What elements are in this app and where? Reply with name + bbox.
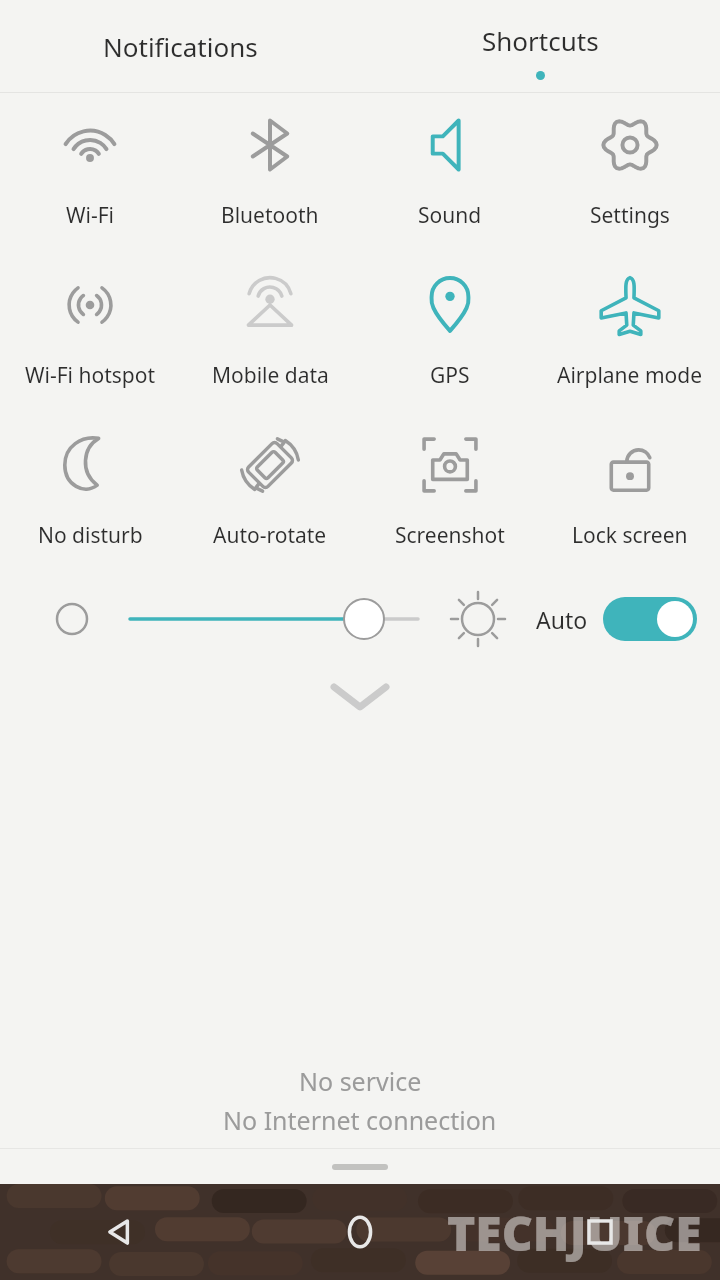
button[interactable]: Lock screen — [540, 413, 720, 573]
button[interactable]: Home — [240, 1184, 480, 1280]
button[interactable]: No disturb — [0, 413, 180, 573]
button[interactable]: Wi-Fi hotspot — [0, 253, 180, 413]
button[interactable]: Bluetooth — [180, 93, 360, 253]
staticText: Screenshot — [395, 521, 505, 550]
staticText: Wi-Fi — [66, 201, 115, 230]
staticText: Lock screen — [572, 521, 688, 550]
staticText: Mobile data — [212, 361, 329, 390]
staticText: Shortcuts — [482, 23, 599, 58]
staticText: Auto — [536, 604, 588, 635]
button[interactable]: Settings — [540, 93, 720, 253]
button[interactable]: Notifications — [0, 0, 360, 92]
staticText: Notifications — [103, 29, 258, 64]
staticText: TECHJUICE — [447, 1200, 702, 1265]
staticText: No disturb — [38, 521, 143, 550]
button[interactable]: Auto-rotate — [180, 413, 360, 573]
staticText: No service — [299, 1064, 422, 1098]
staticText: Sound — [418, 201, 482, 230]
staticText: Wi-Fi hotspot — [25, 361, 156, 390]
staticText: GPS — [430, 361, 470, 390]
button[interactable]: Auto — [536, 597, 697, 641]
button[interactable]: Shortcuts — [360, 0, 720, 92]
staticText: Settings — [590, 201, 670, 230]
button[interactable]: Airplane mode — [540, 253, 720, 413]
button[interactable]: Back — [0, 1184, 240, 1280]
staticText: No Internet connection — [223, 1103, 497, 1137]
button[interactable]: Wi-Fi — [0, 93, 180, 253]
staticText: Airplane mode — [557, 361, 703, 390]
staticText: Bluetooth — [221, 201, 319, 230]
button[interactable]: Recents — [480, 1184, 720, 1280]
staticText: Auto-rotate — [213, 521, 327, 550]
button[interactable]: Screenshot — [360, 413, 540, 573]
button[interactable]: GPS — [360, 253, 540, 413]
button[interactable]: Mobile data — [180, 253, 360, 413]
button[interactable]: Sound — [360, 93, 540, 253]
button[interactable]: Collapse panel — [0, 665, 720, 727]
